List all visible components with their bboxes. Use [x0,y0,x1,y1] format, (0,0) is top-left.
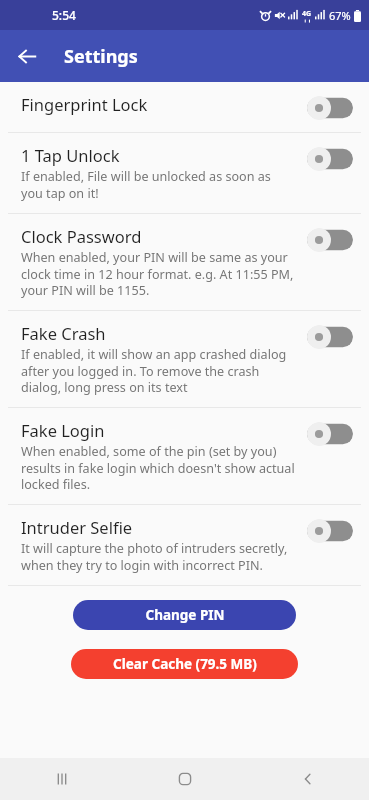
staticText: Settings [64,44,138,69]
button[interactable]: Fake Crash toggle [307,325,353,349]
button[interactable]: Intruder Selfie [0,505,369,585]
staticText: 67% [329,8,351,23]
staticText: Fake Crash [21,322,106,344]
staticText: 5:54 [52,7,76,23]
staticText: 4G [302,9,312,19]
button[interactable]: Intruder Selfie toggle [307,519,353,543]
staticText: If enabled, it will show an app crashed … [21,346,287,395]
staticText: When enabled, your PIN will be same as y… [21,249,294,298]
button[interactable]: Clock Password [0,214,369,310]
staticText: Clock Password [21,225,142,247]
button[interactable]: Clock Password toggle [307,228,353,252]
staticText: Clear Cache (79.5 MB) [113,655,257,673]
button[interactable]: Fingerprint Lock toggle [307,96,353,120]
button[interactable]: Back [246,758,369,800]
button[interactable]: Fake Login [0,408,369,504]
button[interactable]: Fingerprint Lock [0,82,369,132]
button[interactable]: Fake Crash [0,311,369,407]
button[interactable]: 1 Tap Unlock toggle [307,147,353,171]
button[interactable]: Home [123,758,246,800]
button[interactable]: Fake Login toggle [307,422,353,446]
button[interactable]: Back [9,38,45,74]
staticText: 1 Tap Unlock [21,144,120,166]
staticText: Fake Login [21,419,105,441]
button[interactable]: 1 Tap Unlock [0,133,369,213]
staticText: If enabled, File will be unlocked as soo… [21,168,271,201]
button[interactable]: Clear Cache (79.5 MB) [71,649,298,679]
staticText: It will capture the photo of intruders s… [21,540,288,573]
button[interactable]: Recents [0,758,123,800]
staticText: Change PIN [145,606,225,624]
button[interactable]: Change PIN [73,600,296,630]
staticText: Fingerprint Lock [21,93,148,115]
staticText: When enabled, some of the pin (set by yo… [21,443,295,492]
staticText: Intruder Selfie [21,516,133,538]
